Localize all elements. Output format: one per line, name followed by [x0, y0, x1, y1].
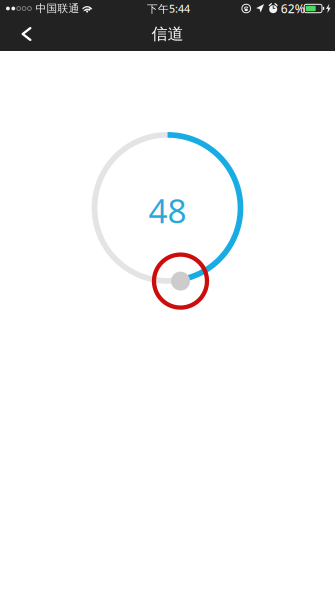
- button[interactable]: Back: [4, 17, 48, 51]
- staticText: 下午5:44: [147, 1, 190, 16]
- staticText: 48: [148, 188, 186, 233]
- staticText: 信道: [151, 24, 183, 44]
- staticText: 中国联通: [35, 2, 79, 15]
- staticText: 62%: [281, 0, 305, 16]
